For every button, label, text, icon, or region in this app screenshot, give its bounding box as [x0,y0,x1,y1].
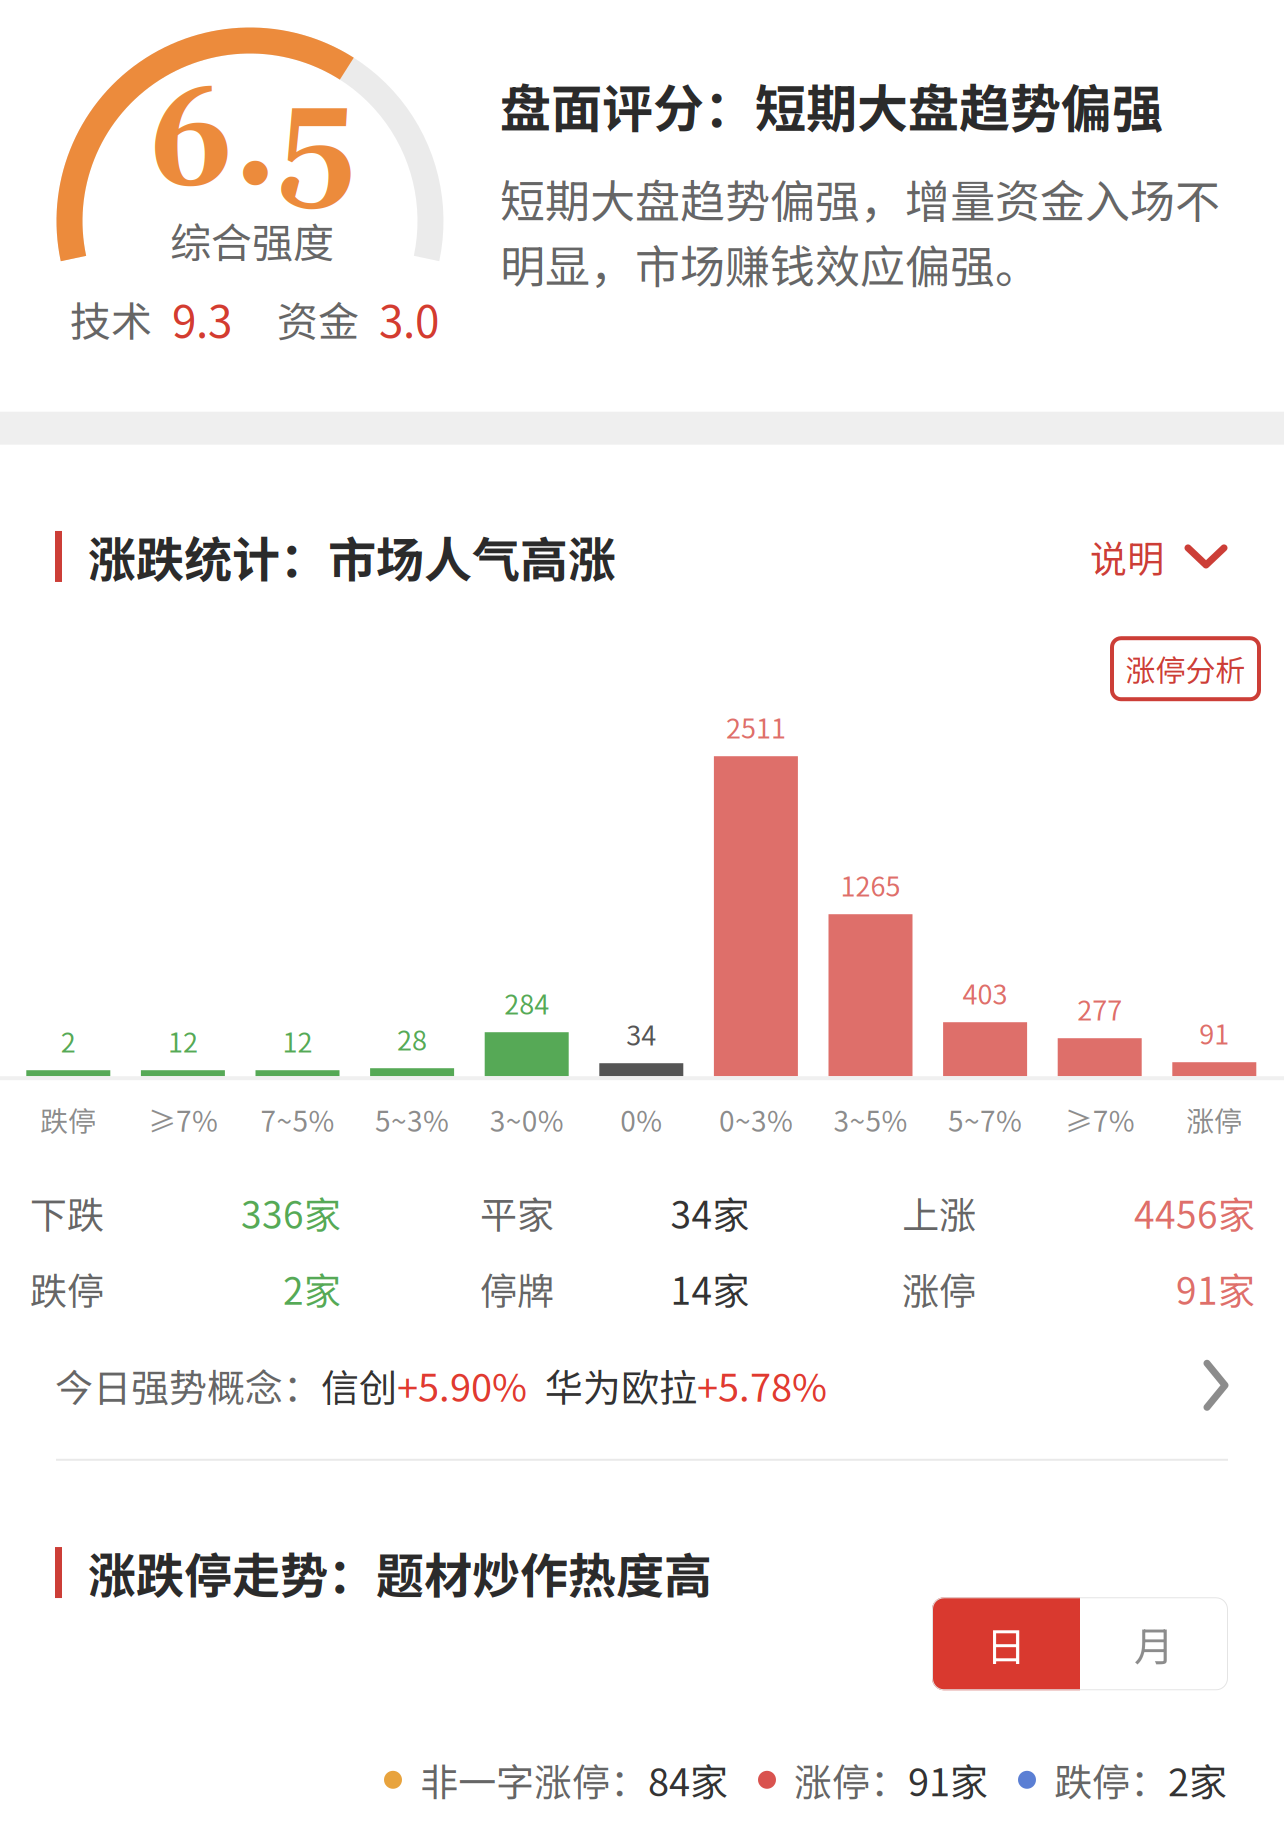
staticText: 上涨 [902,1186,976,1239]
button[interactable]: 今日强势概念： [0,1314,1284,1459]
staticText: 5~3% [375,1099,449,1140]
staticText: 下跌 [30,1186,104,1239]
staticText: 34家 [670,1186,749,1239]
staticText: 91家 [1176,1262,1255,1315]
staticText: 涨停 [1186,1099,1242,1140]
staticText: 停牌 [480,1262,554,1315]
staticText: 9.3 [152,287,232,351]
staticText: 84家 [648,1752,728,1807]
staticText: 2家 [283,1262,341,1315]
staticText: 涨跌统计：市场人气高涨 [88,522,616,591]
staticText: 12 [282,1021,312,1060]
staticText: 华为欧拉 [527,1358,697,1413]
staticText: 涨跌停走势：题材炒作热度高 [88,1538,712,1607]
staticText: 91家 [908,1752,988,1807]
staticText: 0% [620,1099,662,1140]
staticText: 日 [986,1615,1026,1673]
staticText: 综合强度 [170,210,334,270]
staticText: 涨停 [902,1262,976,1315]
staticText: 涨停： [776,1752,908,1807]
staticText: 2 [61,1021,76,1060]
button[interactable]: 涨停分析 [1112,638,1259,699]
staticText: +5.78% [697,1358,827,1413]
staticText: +5.90% [397,1358,527,1413]
staticText: ≥7% [148,1099,218,1140]
staticText: 平家 [480,1186,554,1239]
staticText: 1265 [840,865,900,904]
staticText: 跌停： [1036,1752,1168,1807]
staticText: 14家 [670,1262,749,1315]
staticText: 0~3% [719,1099,793,1140]
staticText: 5~7% [948,1099,1022,1140]
staticText: 说明 [1090,530,1164,583]
staticText: 短期大盘趋势偏强，增量资金入场不明显，市场赚钱效应偏强。 [500,166,1220,296]
staticText: 月 [1134,1615,1174,1673]
staticText: 91 [1199,1013,1229,1052]
staticText: 3~0% [490,1099,564,1140]
staticText: 信创 [321,1358,397,1413]
button[interactable]: 说明 [1090,530,1228,583]
staticText: 非一字涨停： [402,1752,648,1807]
staticText: 今日强势概念： [55,1358,321,1413]
staticText: ≥7% [1065,1099,1135,1140]
staticText: 403 [963,973,1008,1012]
staticText: 跌停 [40,1099,96,1140]
staticText: 盘面评分：短期大盘趋势偏强 [500,68,1163,142]
staticText: 3.0 [359,287,439,351]
staticText: 3~5% [833,1099,907,1140]
staticText: 336家 [241,1186,341,1239]
staticText: 12 [168,1021,198,1060]
staticText: 6.5 [149,63,355,229]
button[interactable]: 日 [932,1597,1080,1690]
button[interactable]: 月 [1080,1597,1228,1690]
staticText: 涨停分析 [1125,647,1245,690]
staticText: 4456家 [1134,1186,1255,1239]
staticText: 34 [626,1014,656,1053]
staticText: 跌停 [30,1262,104,1315]
staticText: 技术 [70,289,152,349]
staticText: 2家 [1168,1752,1227,1807]
staticText: 资金 [232,289,359,349]
staticText: 7~5% [260,1099,334,1140]
staticText: 284 [504,983,549,1022]
staticText: 28 [397,1019,427,1058]
staticText: 2511 [726,707,786,746]
staticText: 277 [1077,989,1122,1028]
